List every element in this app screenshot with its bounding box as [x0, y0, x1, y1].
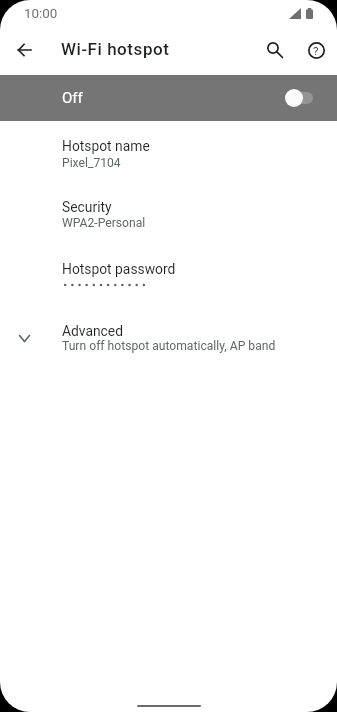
staticText: Hotspot password — [62, 261, 176, 277]
staticText: Security — [62, 199, 112, 215]
staticText: 10:00 — [24, 6, 58, 22]
staticText: Turn off hotspot automatically, AP band — [62, 339, 276, 353]
button[interactable]: Hotspot name — [0, 130, 337, 191]
staticText: Wi-Fi hotspot — [61, 39, 170, 59]
button[interactable]: Advanced — [0, 315, 337, 376]
staticText: Hotspot name — [62, 138, 150, 154]
staticText: Advanced — [62, 323, 124, 339]
button[interactable]: Search — [254, 29, 294, 69]
staticText: ? — [313, 44, 319, 57]
button[interactable]: Help — [296, 30, 336, 70]
staticText: Pixel_7104 — [62, 156, 121, 170]
button[interactable]: Security — [0, 191, 337, 252]
button[interactable]: Back — [4, 30, 44, 70]
button[interactable]: Hotspot password — [0, 253, 337, 314]
button[interactable]: Off — [0, 75, 337, 121]
staticText: Off — [62, 89, 83, 107]
staticText: WPA2-Personal — [62, 216, 146, 230]
